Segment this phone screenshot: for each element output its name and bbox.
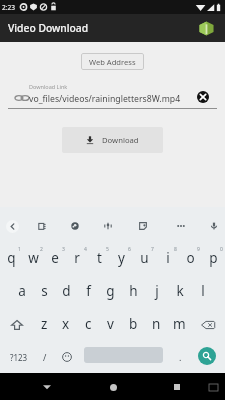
button[interactable]: p [202,242,225,275]
staticText: o [186,249,195,267]
staticText: p [209,249,218,267]
button[interactable]: o [179,242,202,275]
button[interactable]: a [11,275,33,308]
staticText: 6 [128,246,131,253]
button[interactable]: Home [102,376,124,398]
button[interactable]: h [122,275,145,308]
staticText: / [43,351,47,363]
button[interactable]: Backspace [191,308,225,341]
staticText: y [118,249,125,267]
staticText: j [155,282,159,300]
staticText: k [176,282,184,300]
button[interactable]: Shift [0,308,33,341]
button[interactable]: Search [198,347,216,365]
button[interactable]: y [110,242,133,275]
staticText: Download [102,135,139,145]
button[interactable]: b [122,308,145,341]
button[interactable]: d [55,275,77,308]
staticText: a [18,282,26,300]
button[interactable]: m [168,308,191,341]
staticText: t [97,249,102,267]
staticText: h [129,282,138,300]
button[interactable]: Web Address [81,53,144,70]
button[interactable]: . [170,341,190,373]
staticText: 2 [40,246,43,253]
button[interactable]: GIF [67,218,82,233]
staticText: z [41,315,48,333]
button[interactable]: j [145,275,168,308]
button[interactable]: / [34,341,56,373]
staticText: Download Link [29,83,68,90]
staticText: e [51,249,59,267]
staticText: q [7,249,16,267]
button[interactable]: ?123 [5,341,33,373]
staticText: b [129,315,138,333]
button[interactable]: k [168,275,191,308]
staticText: 0 [220,246,223,253]
button[interactable]: f [77,275,99,308]
staticText: u [140,249,149,267]
staticText: 3 [62,246,65,253]
staticText: 7 [151,246,154,253]
staticText: w [28,249,39,267]
button[interactable]: t [88,242,110,275]
staticText: c [85,315,92,333]
staticText: n [152,315,161,333]
staticText: s [41,282,48,300]
staticText: r [74,249,80,267]
button[interactable]: Clear text [197,91,209,103]
button[interactable]: e [44,242,66,275]
staticText: 1 [18,246,21,253]
button[interactable]: Sticker [135,218,150,233]
staticText: 2:23 [2,3,15,12]
button[interactable]: n [145,308,168,341]
button[interactable]: l [191,275,214,308]
staticText: 9 [197,246,200,253]
button[interactable]: Recent apps [166,376,188,398]
button[interactable]: i [156,242,179,275]
button[interactable]: Clipboard [34,218,49,233]
button[interactable]: r [66,242,88,275]
button[interactable]: s [33,275,55,308]
button[interactable]: z [33,308,55,341]
staticText: 8 [174,246,177,253]
staticText: l [201,282,205,300]
button[interactable]: x [55,308,77,341]
staticText: i [166,249,170,267]
button[interactable]: c [77,308,99,341]
button[interactable]: v [99,308,122,341]
staticText: m [173,315,186,333]
staticText: v [107,315,114,333]
staticText: ?123 [10,352,28,363]
button[interactable]: u [133,242,156,275]
staticText: x [62,315,70,333]
staticText: g [106,282,115,300]
button[interactable]: w [22,242,44,275]
staticText: d [62,282,71,300]
button[interactable]: More options [173,218,188,233]
button[interactable]: Settings [100,218,115,233]
staticText: f [86,282,91,300]
staticText: Video Download [8,21,89,35]
staticText: Web Address [89,57,136,67]
button[interactable]: Download [62,127,163,153]
staticText: 5 [106,246,109,253]
button[interactable]: Emoji [57,341,77,373]
button[interactable]: Back [36,376,58,398]
staticText: 4 [84,246,87,253]
button[interactable]: App logo [197,19,215,37]
button[interactable]: q [0,242,22,275]
staticText: . [179,351,182,363]
staticText: vo_files/videos/rainingletters8W.mp4 [29,93,181,105]
button[interactable]: Switch keyboard [205,379,221,395]
button[interactable]: g [99,275,122,308]
button[interactable]: Back [4,218,20,234]
button[interactable]: Voice input [206,218,221,233]
